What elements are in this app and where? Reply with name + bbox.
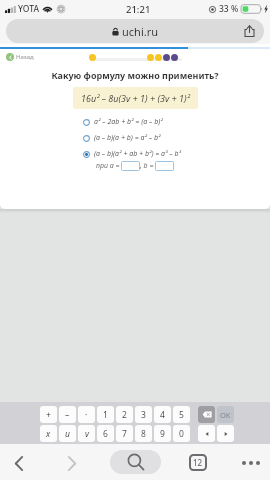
- button[interactable]: 7: [116, 425, 133, 442]
- button[interactable]: 9: [154, 425, 171, 442]
- staticText: , b =: [140, 161, 154, 171]
- staticText: uchi.ru: [122, 24, 159, 39]
- button[interactable]: ·: [78, 406, 95, 423]
- staticText: 12: [193, 457, 203, 468]
- button[interactable]: +: [40, 406, 57, 423]
- staticText: 8: [141, 428, 146, 440]
- button[interactable]: 5: [173, 406, 190, 423]
- button[interactable]: 8: [135, 425, 152, 442]
- button[interactable]: Backspace: [198, 406, 215, 423]
- staticText: OK: [220, 410, 231, 420]
- button[interactable]: OK: [217, 406, 234, 423]
- button[interactable]: 4: [154, 406, 171, 423]
- button[interactable]: Move right: [217, 425, 234, 442]
- staticText: v: [85, 428, 89, 440]
- staticText: 1: [103, 409, 108, 421]
- staticText: +: [46, 409, 51, 421]
- staticText: –: [65, 409, 70, 421]
- button[interactable]: uchi.ru: [6, 19, 264, 43]
- button[interactable]: Назад: [6, 53, 34, 61]
- staticText: YOTA: [18, 3, 39, 15]
- button[interactable]: Search: [110, 450, 161, 474]
- button[interactable]: 0: [173, 425, 190, 442]
- button[interactable]: 6: [97, 425, 114, 442]
- staticText: u: [65, 428, 70, 440]
- button[interactable]: 2: [116, 406, 133, 423]
- staticText: 0: [179, 428, 184, 440]
- staticText: (a – b)(a + b) = a² – b²: [94, 133, 161, 143]
- staticText: 21:21: [126, 3, 151, 16]
- button[interactable]: Tabs: [189, 454, 207, 471]
- staticText: ·: [85, 409, 88, 421]
- button[interactable]: Move left: [198, 425, 215, 442]
- button[interactable]: (a – b)(a² + ab + b²) = a³ – b³: [83, 149, 182, 159]
- staticText: x: [46, 428, 51, 440]
- button[interactable]: x: [40, 425, 57, 442]
- button[interactable]: Back: [9, 453, 29, 473]
- button[interactable]: 3: [135, 406, 152, 423]
- staticText: a² – 2ab + b² = (a – b)²: [94, 117, 163, 127]
- staticText: Какую формулу можно применить?: [0, 69, 270, 81]
- staticText: 16u² – 8u(3v + 1) + (3v + 1)²: [81, 92, 190, 104]
- button[interactable]: [155, 161, 174, 171]
- staticText: 2: [122, 409, 127, 421]
- button[interactable]: –: [59, 406, 76, 423]
- button[interactable]: More: [240, 454, 261, 471]
- button[interactable]: u: [59, 425, 76, 442]
- staticText: 9: [160, 428, 165, 440]
- button[interactable]: Forward: [62, 453, 82, 473]
- staticText: 33 %: [219, 3, 239, 15]
- button[interactable]: [121, 161, 140, 171]
- staticText: Назад: [16, 53, 34, 61]
- button[interactable]: a² – 2ab + b² = (a – b)²: [83, 117, 163, 127]
- staticText: 5: [179, 409, 184, 421]
- staticText: при a =: [96, 161, 120, 171]
- staticText: 7: [122, 428, 127, 440]
- staticText: 6: [103, 428, 108, 440]
- staticText: 3: [141, 409, 146, 421]
- button[interactable]: Share: [241, 23, 257, 39]
- button[interactable]: (a – b)(a + b) = a² – b²: [83, 133, 161, 143]
- staticText: 4: [160, 409, 165, 421]
- staticText: (a – b)(a² + ab + b²) = a³ – b³: [94, 149, 182, 159]
- button[interactable]: v: [78, 425, 95, 442]
- button[interactable]: 1: [97, 406, 114, 423]
